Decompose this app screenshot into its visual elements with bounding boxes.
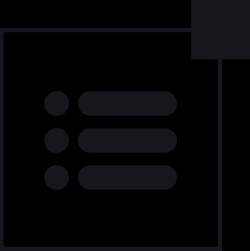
button[interactable]: Lists	[0, 0, 250, 251]
